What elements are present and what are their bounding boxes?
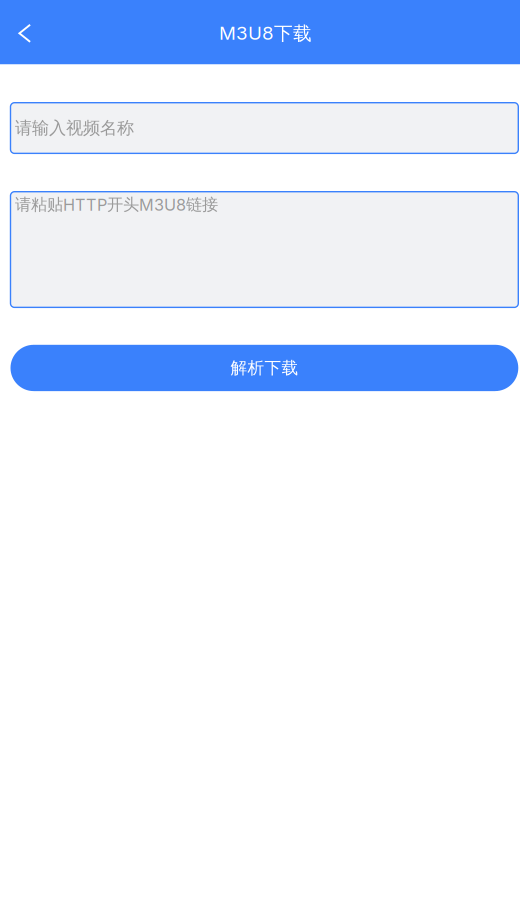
staticText: 请输入视频名称 [15,117,134,139]
button[interactable]: Back [0,0,45,66]
staticText: 请粘贴HTTP开头M3U8链接 [15,194,218,215]
button[interactable]: 请粘贴HTTP开头M3U8链接 [10,192,518,307]
staticText: M3U8下载 [219,22,312,45]
staticText: 解析下载 [230,357,298,378]
button[interactable]: 请输入视频名称 [10,103,518,153]
button[interactable]: 解析下载 [10,345,518,391]
